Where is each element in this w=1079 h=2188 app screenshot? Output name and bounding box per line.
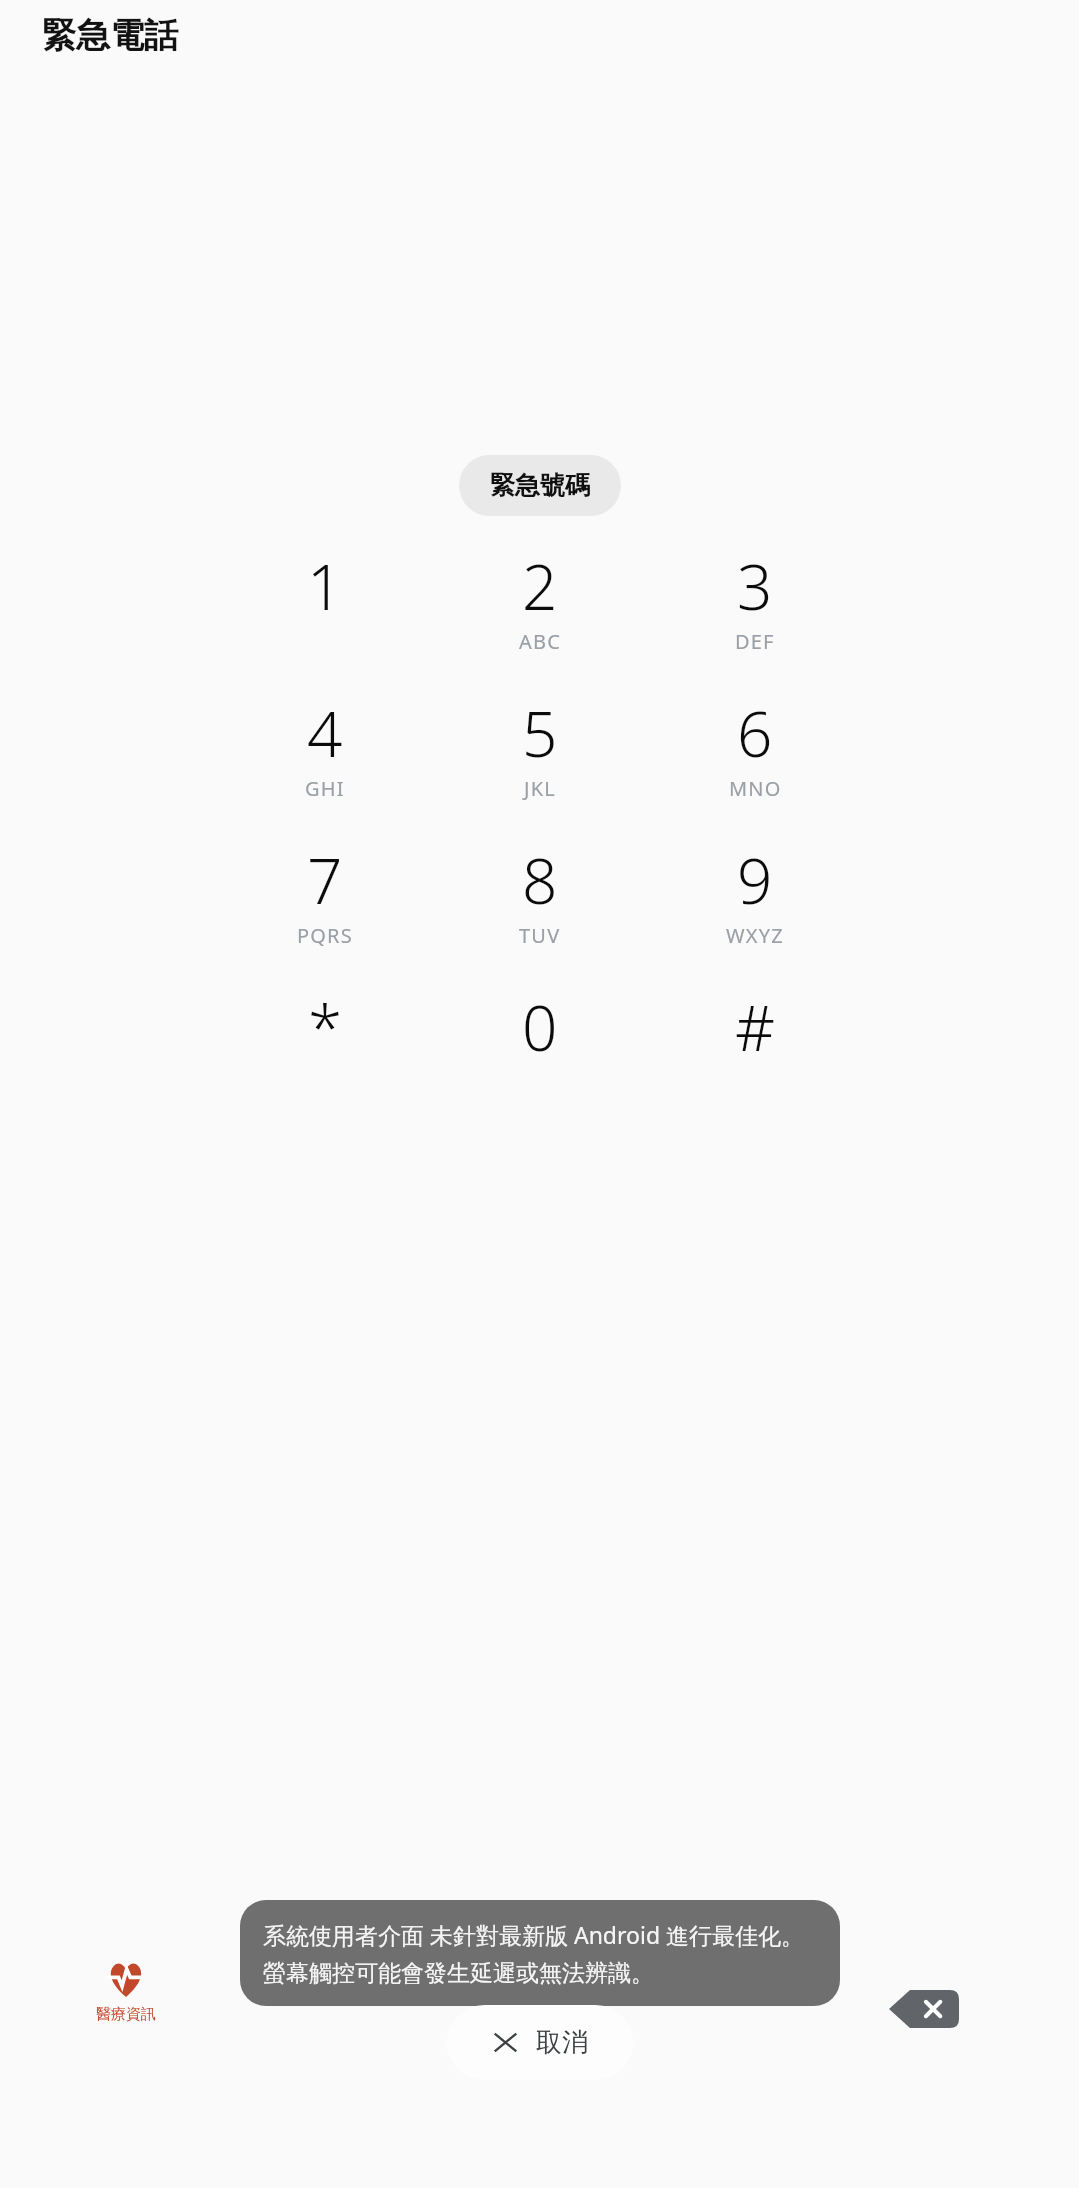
button[interactable]: 4: [265, 691, 385, 802]
staticText: 7: [307, 838, 343, 922]
staticText: 緊急號碼: [490, 470, 590, 501]
staticText: TUV: [519, 922, 561, 949]
button[interactable]: Backspace: [889, 1990, 959, 2028]
staticText: 醫療資訊: [96, 2005, 156, 2024]
staticText: MNO: [729, 775, 782, 802]
staticText: 8: [522, 838, 558, 922]
button[interactable]: 5: [480, 691, 600, 802]
staticText: #: [735, 985, 776, 1069]
staticText: 1: [307, 544, 343, 628]
button[interactable]: 7: [265, 838, 385, 949]
staticText: DEF: [735, 628, 775, 655]
staticText: 6: [737, 691, 773, 775]
button[interactable]: 1: [265, 544, 385, 628]
staticText: *: [308, 985, 343, 1069]
staticText: GHI: [305, 775, 345, 802]
staticText: 緊急電話: [42, 14, 178, 57]
staticText: 9: [737, 838, 773, 922]
staticText: 取消: [536, 2026, 588, 2059]
button[interactable]: 8: [480, 838, 600, 949]
staticText: 2: [522, 544, 558, 628]
staticText: ABC: [519, 628, 562, 655]
button[interactable]: 3: [695, 544, 815, 655]
button[interactable]: 醫療資訊: [90, 1956, 162, 2030]
button[interactable]: 0: [480, 985, 600, 1069]
staticText: 系統使用者介面 未針對最新版 Android 進行最佳化。螢幕觸控可能會發生延遲…: [263, 1919, 817, 1987]
staticText: 4: [307, 691, 343, 775]
staticText: WXYZ: [726, 922, 784, 949]
button[interactable]: 9: [695, 838, 815, 949]
button[interactable]: Call: [496, 1966, 584, 2054]
button[interactable]: 取消: [447, 2005, 633, 2080]
staticText: 0: [522, 985, 558, 1069]
button[interactable]: 緊急號碼: [459, 455, 621, 516]
staticText: JKL: [524, 775, 556, 802]
staticText: 5: [522, 691, 558, 775]
button[interactable]: *: [265, 985, 385, 1069]
button[interactable]: 6: [695, 691, 815, 802]
button[interactable]: #: [695, 985, 815, 1069]
staticText: 3: [737, 544, 773, 628]
button[interactable]: 2: [480, 544, 600, 655]
staticText: PQRS: [297, 922, 353, 949]
